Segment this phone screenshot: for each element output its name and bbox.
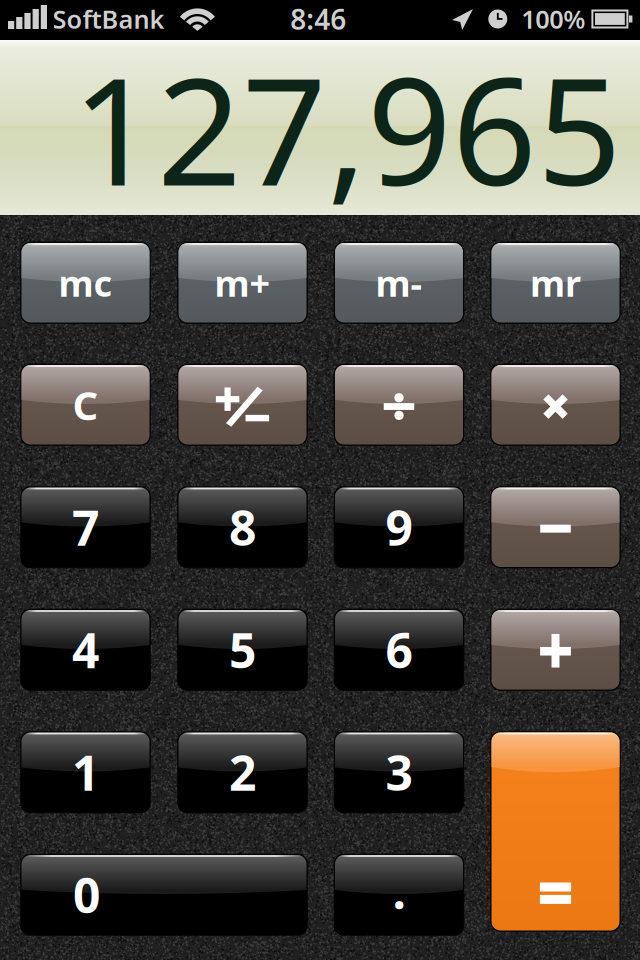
staticText: 8 (229, 495, 256, 559)
button[interactable]: 3 (335, 732, 463, 812)
staticText: C (72, 378, 98, 431)
staticText: m+ (214, 259, 270, 307)
staticText: 2 (229, 740, 256, 804)
button[interactable]: 4 (21, 610, 149, 689)
staticText: 5 (229, 618, 256, 682)
staticText: 7 (72, 495, 99, 559)
button[interactable]: mr (491, 243, 619, 322)
button[interactable]: mc (21, 243, 149, 322)
staticText: SoftBank (52, 2, 164, 36)
button[interactable]: 8 (178, 487, 306, 567)
staticText: 4 (72, 618, 99, 682)
button[interactable]: Multiply (491, 365, 619, 444)
staticText: 127,965 (72, 30, 622, 226)
button[interactable]: 9 (335, 487, 463, 567)
staticText: 9 (385, 495, 412, 559)
button[interactable]: 2 (178, 732, 306, 812)
button[interactable]: Divide (335, 365, 463, 444)
button[interactable]: 7 (21, 487, 149, 567)
button[interactable]: 6 (335, 610, 463, 689)
staticText: 8:46 (290, 0, 346, 38)
button[interactable]: m+ (178, 243, 306, 322)
staticText: . (392, 859, 405, 923)
staticText: 6 (385, 618, 412, 682)
staticText: mc (58, 259, 112, 307)
button[interactable]: 5 (178, 610, 306, 689)
button[interactable]: Equals (491, 732, 619, 930)
staticText: mr (530, 259, 581, 307)
staticText: 100% (521, 2, 585, 36)
button[interactable]: Plus Minus (178, 365, 306, 444)
staticText: m- (375, 259, 422, 307)
button[interactable]: C (21, 365, 149, 444)
staticText: 0 (73, 863, 100, 927)
staticText: 1 (72, 740, 99, 804)
button[interactable]: Minus (491, 487, 619, 567)
staticText: 3 (385, 740, 412, 804)
button[interactable]: . (335, 855, 463, 934)
button[interactable]: Plus (491, 610, 619, 689)
button[interactable]: 1 (21, 732, 149, 812)
button[interactable]: m- (335, 243, 463, 322)
button[interactable]: 0 (21, 855, 306, 934)
